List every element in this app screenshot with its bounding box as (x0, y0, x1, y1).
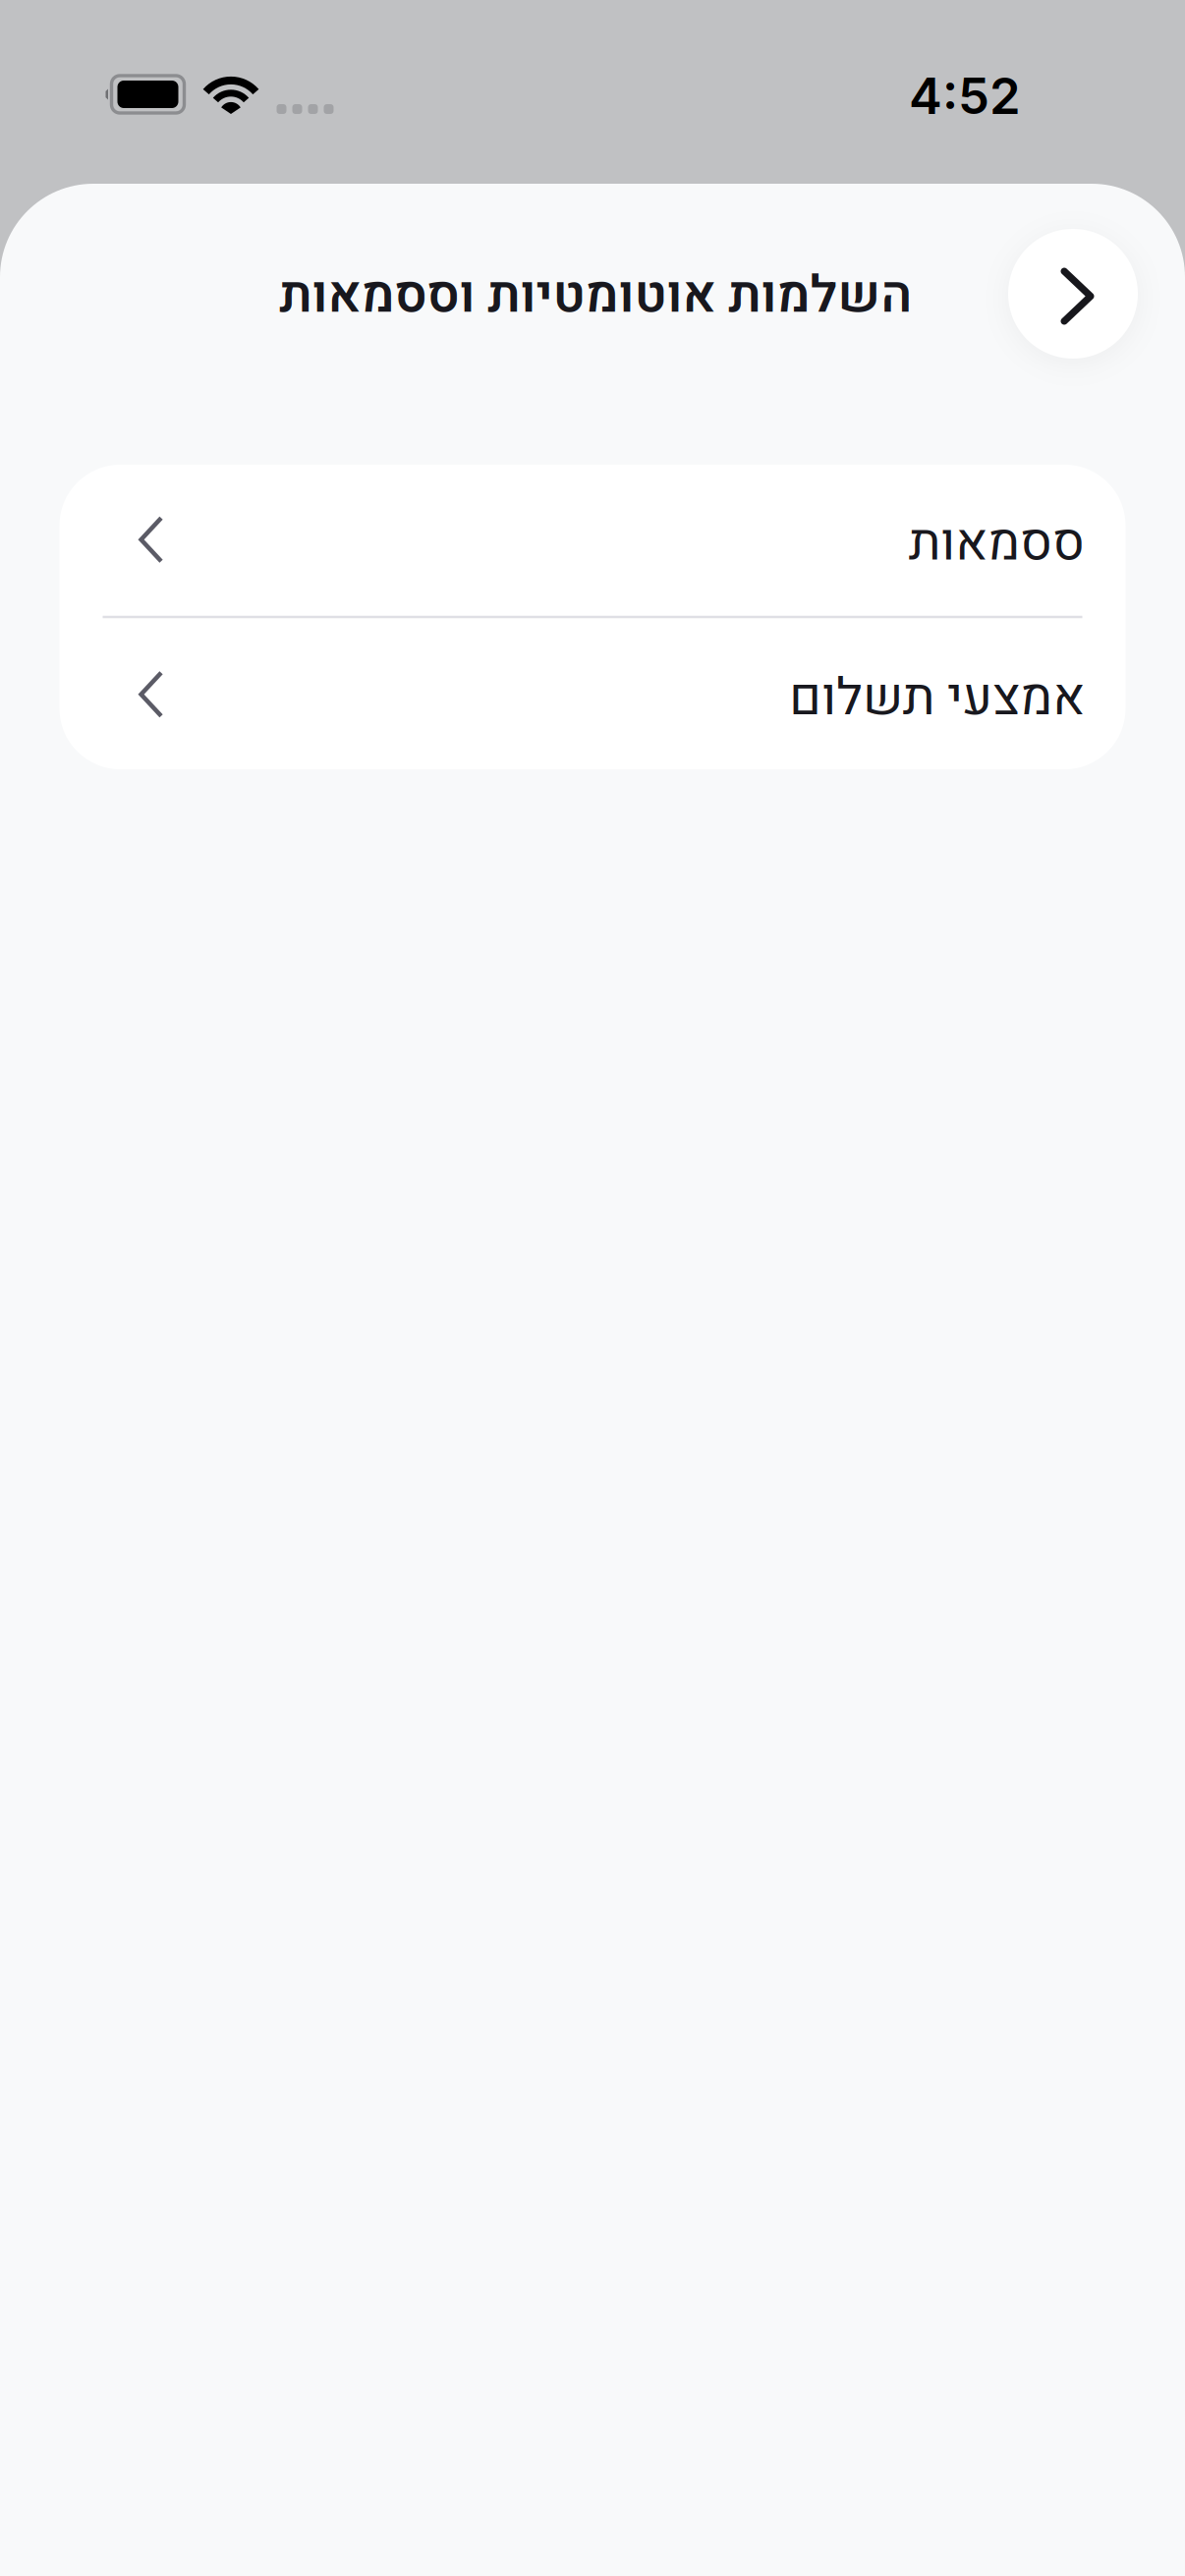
staticText: 4:52 (909, 66, 1021, 126)
staticText: ססמאות (908, 506, 1084, 581)
staticText: אמצעי תשלום (789, 661, 1084, 736)
button[interactable]: אמצעי תשלום (59, 618, 1126, 770)
button[interactable]: Back (1008, 229, 1138, 359)
button[interactable]: ססמאות (59, 464, 1126, 616)
staticText: השלמות אוטומטיות וססמאות (279, 258, 912, 333)
